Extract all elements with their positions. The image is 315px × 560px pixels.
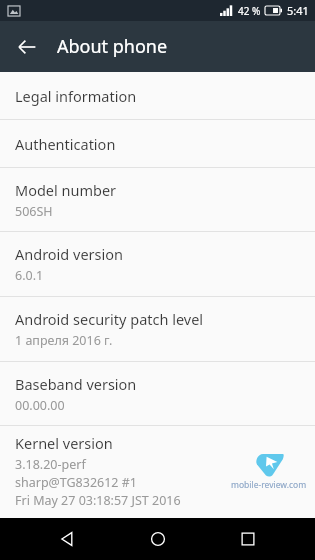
staticText: Fri May 27 03:18:57 JST 2016 <box>15 492 181 509</box>
staticText: 506SH <box>15 203 53 220</box>
button[interactable]: Back <box>43 518 91 560</box>
staticText: 1 апреля 2016 г. <box>15 332 113 349</box>
button[interactable]: Recent apps <box>224 518 272 560</box>
staticText: Baseband version <box>15 374 137 394</box>
staticText: 42 % <box>238 4 261 18</box>
button[interactable]: Model number <box>0 168 315 231</box>
staticText: Legal information <box>15 86 137 106</box>
staticText: Model number <box>15 180 117 200</box>
button[interactable]: Authentication <box>0 120 315 167</box>
staticText: mobile-review.com <box>231 479 307 491</box>
staticText: Android version <box>15 244 123 264</box>
staticText: 5:41 <box>287 3 309 18</box>
staticText: sharp@TG832612 #1 <box>15 474 137 491</box>
button[interactable]: Legal information <box>0 73 315 119</box>
button[interactable]: Kernel version <box>0 426 315 516</box>
button[interactable]: Navigate up <box>6 26 48 68</box>
button[interactable]: Baseband version <box>0 362 315 425</box>
staticText: About phone <box>57 34 168 59</box>
staticText: 6.0.1 <box>15 267 44 284</box>
button[interactable]: Android version <box>0 232 315 296</box>
staticText: Android security patch level <box>15 309 204 329</box>
button[interactable]: Home <box>134 518 182 560</box>
staticText: Kernel version <box>15 433 113 453</box>
staticText: Authentication <box>15 134 116 154</box>
button[interactable]: Android security patch level <box>0 297 315 361</box>
staticText: 3.18.20-perf <box>15 456 86 473</box>
staticText: 00.00.00 <box>15 397 65 414</box>
